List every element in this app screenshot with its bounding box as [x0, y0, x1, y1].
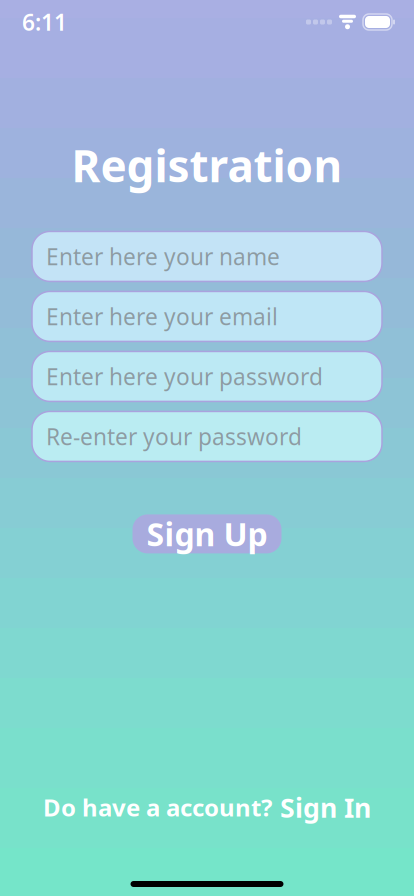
staticText: Registration — [71, 136, 342, 194]
staticText: Sign Up — [146, 513, 267, 555]
staticText: Re-enter your password — [46, 421, 302, 451]
button[interactable]: Sign In — [280, 790, 371, 825]
staticText: 6:11 — [22, 7, 67, 37]
staticText: Enter here your email — [46, 301, 278, 331]
staticText: Enter here your name — [46, 241, 280, 271]
button[interactable]: Enter here your email — [32, 291, 382, 341]
staticText: Sign In — [280, 790, 371, 825]
button[interactable]: Enter here your name — [32, 231, 382, 281]
staticText: Enter here your password — [46, 361, 323, 391]
staticText: Do have a account? — [43, 791, 272, 823]
button[interactable]: Sign Up — [132, 514, 281, 553]
button[interactable]: Re-enter your password — [32, 411, 382, 461]
button[interactable]: Enter here your password — [32, 351, 382, 401]
